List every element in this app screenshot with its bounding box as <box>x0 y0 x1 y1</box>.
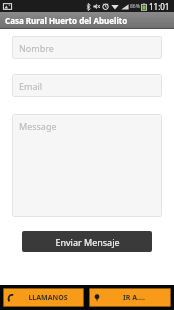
staticText: 11:01 <box>149 1 170 12</box>
staticText: Message <box>19 120 57 132</box>
button[interactable]: Nombre <box>12 36 162 59</box>
other: Ir a <box>93 294 101 302</box>
staticText: LLAMANOS <box>28 293 68 303</box>
staticText: Nombre <box>19 42 54 54</box>
button[interactable]: Email <box>12 74 162 97</box>
button[interactable]: Llamanos <box>3 288 84 307</box>
button[interactable]: Enviar Mensaje <box>22 231 152 252</box>
staticText: 86% <box>130 3 140 10</box>
staticText: Enviar Mensaje <box>55 236 120 248</box>
button[interactable]: Ir a <box>89 288 171 307</box>
other: Llamanos <box>7 294 15 302</box>
staticText: IR A.... <box>123 293 145 303</box>
staticText: Email <box>19 80 43 92</box>
staticText: Casa Rural Huerto del Abuelito <box>5 15 128 26</box>
button[interactable]: Message <box>12 114 162 217</box>
